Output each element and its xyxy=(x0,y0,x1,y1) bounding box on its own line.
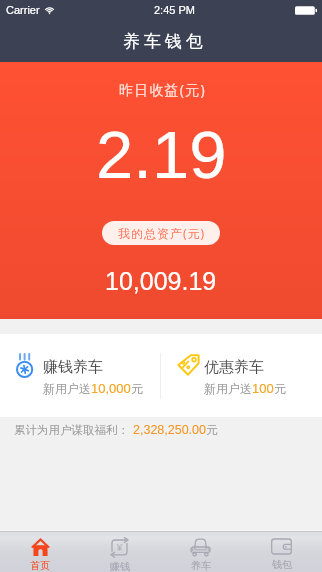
staticText: 我的总资产(元) xyxy=(118,225,206,241)
staticText: 2.19 xyxy=(96,117,227,192)
staticText: 10,009.19 xyxy=(105,267,217,295)
staticText: 累计为用户谋取福利： xyxy=(14,423,129,437)
staticText: 10,000 xyxy=(91,381,131,396)
button[interactable]: Car care xyxy=(160,532,241,572)
staticText: 首页 xyxy=(30,559,50,572)
staticText: 养车 xyxy=(191,559,211,572)
staticText: 养车钱包 xyxy=(121,31,205,52)
button[interactable]: Wallet xyxy=(241,532,322,572)
button[interactable]: 优惠养车 xyxy=(161,334,322,417)
button[interactable]: Home xyxy=(0,532,80,572)
staticText: 优惠养车 xyxy=(204,358,264,377)
button[interactable]: Earn xyxy=(80,532,160,572)
staticText: 昨日收益(元) xyxy=(119,80,206,99)
staticText: 钱包 xyxy=(272,558,292,571)
button[interactable]: 我的总资产(元) xyxy=(102,221,220,245)
staticText: 100 xyxy=(252,381,274,396)
button[interactable]: 赚钱养车 xyxy=(0,334,160,417)
staticText: 2:45 PM xyxy=(154,4,195,16)
staticText: 赚钱 xyxy=(110,560,130,572)
staticText: Carrier xyxy=(6,4,40,16)
staticText: 元 xyxy=(131,381,143,396)
staticText: 新用户送 xyxy=(204,381,252,396)
staticText: 新用户送 xyxy=(43,381,91,396)
staticText: 元 xyxy=(206,423,218,437)
staticText: 2,328,250.00 xyxy=(133,423,206,437)
staticText: 元 xyxy=(274,381,286,396)
staticText: 赚钱养车 xyxy=(43,358,103,377)
